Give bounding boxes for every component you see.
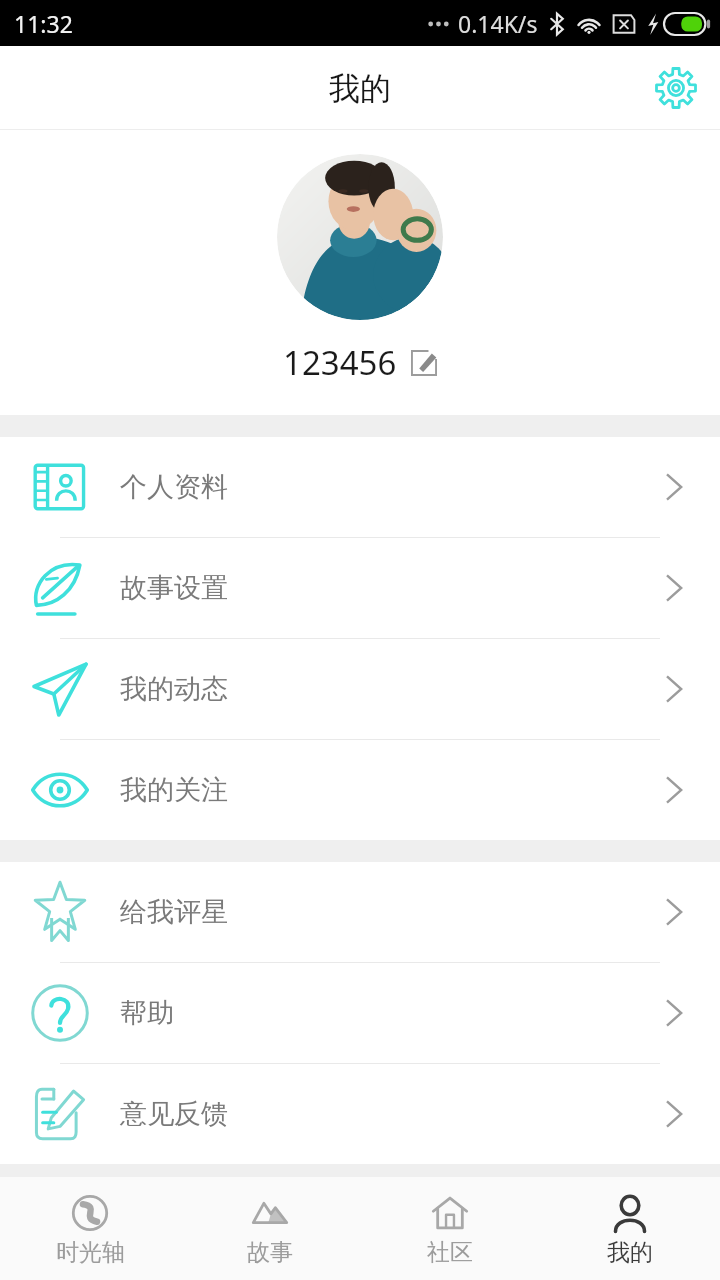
- button[interactable]: 个人资料: [0, 437, 720, 537]
- button[interactable]: Community: [360, 1177, 540, 1280]
- staticText: 11:32: [14, 8, 73, 39]
- button[interactable]: 我的关注: [0, 740, 720, 840]
- button[interactable]: 123456: [275, 336, 446, 389]
- button[interactable]: 意见反馈: [0, 1064, 720, 1164]
- staticText: 故事: [247, 1238, 293, 1267]
- staticText: 0.14K/s: [458, 8, 538, 39]
- button[interactable]: 给我评星: [0, 862, 720, 962]
- staticText: 意见反馈: [120, 1097, 628, 1131]
- button[interactable]: Profile photo: [277, 154, 443, 320]
- staticText: 时光轴: [56, 1238, 125, 1267]
- staticText: 我的: [329, 69, 391, 108]
- staticText: 我的动态: [120, 672, 628, 706]
- button[interactable]: Stories: [180, 1177, 360, 1280]
- staticText: 给我评星: [120, 895, 628, 929]
- button[interactable]: 我的动态: [0, 639, 720, 739]
- button[interactable]: Settings: [646, 58, 706, 118]
- button[interactable]: Timeline: [0, 1177, 180, 1280]
- staticText: 我的: [607, 1238, 653, 1267]
- button[interactable]: 故事设置: [0, 538, 720, 638]
- staticText: 帮助: [120, 996, 628, 1030]
- staticText: 123456: [283, 340, 397, 385]
- staticText: 我的关注: [120, 773, 628, 807]
- button[interactable]: Profile: [540, 1177, 720, 1280]
- staticText: 社区: [427, 1238, 473, 1267]
- button[interactable]: 帮助: [0, 963, 720, 1063]
- staticText: 个人资料: [120, 470, 628, 504]
- staticText: 故事设置: [120, 571, 628, 605]
